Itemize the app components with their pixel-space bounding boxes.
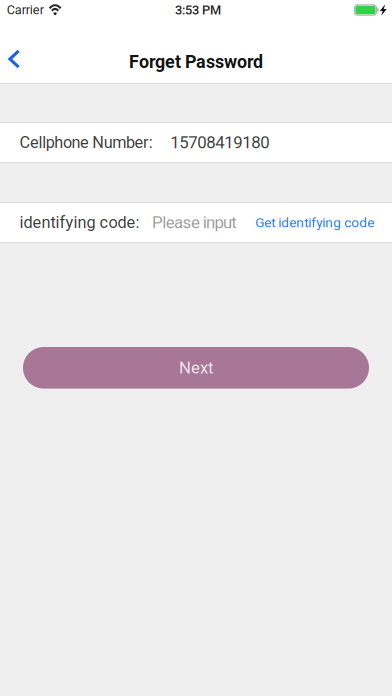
staticText: identifying code: [19, 213, 139, 232]
button[interactable]: Get identifying code [255, 214, 374, 230]
staticText: Next [179, 358, 213, 377]
staticText: Carrier [7, 3, 44, 17]
staticText: 15708419180 [170, 133, 269, 152]
staticText: Forget Password [129, 51, 263, 72]
staticText: Please input [152, 213, 236, 232]
staticText: Get identifying code [255, 214, 374, 230]
staticText: Cellphone Number: [19, 133, 153, 152]
button[interactable]: Back [0, 39, 28, 79]
staticText: 3:53 PM [175, 2, 221, 17]
button[interactable]: Next [23, 347, 369, 389]
